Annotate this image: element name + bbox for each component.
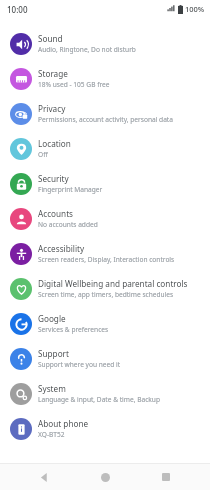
button[interactable]: Sound bbox=[0, 26, 210, 61]
staticText: Screen time, app timers, bedtime schedul… bbox=[38, 290, 174, 299]
button[interactable]: Location bbox=[0, 131, 210, 166]
staticText: 10:00 bbox=[7, 4, 28, 15]
staticText: Screen readers, Display, Interaction con… bbox=[38, 255, 175, 264]
button[interactable]: About phone bbox=[0, 411, 210, 446]
button[interactable]: Accessibility bbox=[0, 236, 210, 271]
staticText: Permissions, account activity, personal … bbox=[38, 115, 173, 124]
staticText: XQ-BT52 bbox=[38, 430, 65, 439]
staticText: Accessibility bbox=[38, 243, 85, 254]
button[interactable]: System bbox=[0, 376, 210, 411]
staticText: Location bbox=[38, 138, 71, 149]
button[interactable]: Home bbox=[88, 464, 122, 490]
staticText: About phone bbox=[38, 418, 89, 429]
staticText: Support where you need it bbox=[38, 360, 121, 369]
staticText: Fingerprint Manager bbox=[38, 185, 103, 194]
button[interactable]: Storage bbox=[0, 61, 210, 96]
staticText: Services & preferences bbox=[38, 325, 109, 334]
button[interactable]: Security bbox=[0, 166, 210, 201]
staticText: Privacy bbox=[38, 103, 66, 114]
button[interactable]: Support bbox=[0, 341, 210, 376]
button[interactable]: Privacy bbox=[0, 96, 210, 131]
staticText: Google bbox=[38, 313, 66, 324]
button[interactable]: Google bbox=[0, 306, 210, 341]
staticText: Off bbox=[38, 150, 48, 159]
button[interactable]: Recent apps bbox=[149, 464, 183, 490]
staticText: Audio, Ringtone, Do not disturb bbox=[38, 45, 136, 54]
staticText: Language & input, Date & time, Backup bbox=[38, 395, 160, 404]
staticText: System bbox=[38, 383, 66, 394]
staticText: Accounts bbox=[38, 208, 74, 219]
button[interactable]: Digital Wellbeing and parental controls bbox=[0, 271, 210, 306]
staticText: 18% used - 105 GB free bbox=[38, 80, 110, 89]
staticText: Storage bbox=[38, 68, 68, 79]
button[interactable]: Accounts bbox=[0, 201, 210, 236]
staticText: Support bbox=[38, 348, 69, 359]
button[interactable]: Back bbox=[27, 464, 61, 490]
staticText: Digital Wellbeing and parental controls bbox=[38, 278, 188, 289]
staticText: 100% bbox=[185, 4, 205, 14]
staticText: Security bbox=[38, 173, 69, 184]
staticText: No accounts added bbox=[38, 220, 98, 229]
staticText: Sound bbox=[38, 33, 63, 44]
